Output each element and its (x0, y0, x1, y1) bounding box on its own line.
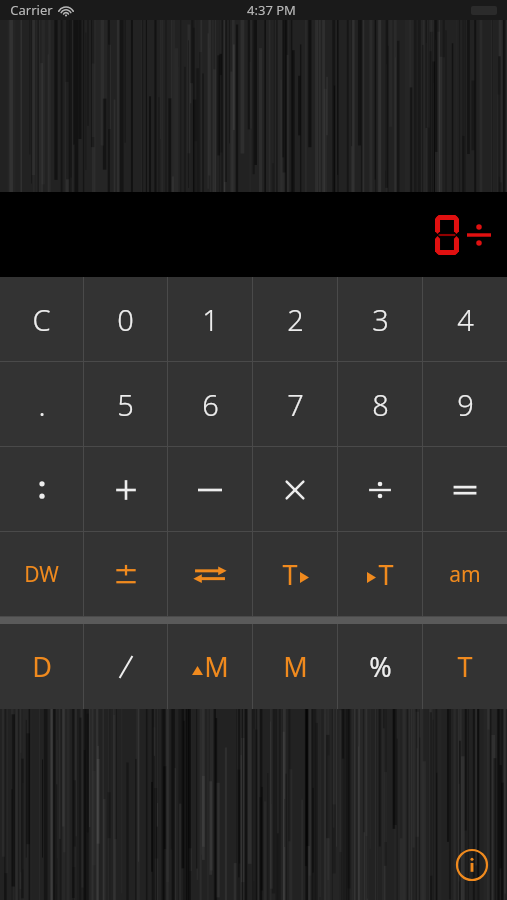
button[interactable]: T (423, 624, 507, 709)
button[interactable]: Time forward (253, 532, 337, 617)
button[interactable]: 0 (84, 277, 167, 362)
button[interactable]: M (253, 624, 337, 709)
other: Multiply (253, 447, 337, 532)
button[interactable]: 9 (423, 362, 507, 447)
button[interactable]: Slash (84, 624, 167, 709)
button[interactable]: 7 (253, 362, 337, 447)
button[interactable]: Info (455, 848, 489, 882)
button[interactable]: Colon (0, 447, 83, 532)
staticText: % (369, 648, 392, 685)
other: Time forward (253, 532, 337, 617)
staticText: D (32, 648, 52, 685)
staticText: 8 (372, 385, 389, 424)
button[interactable]: am (423, 532, 507, 617)
staticText: 7 (287, 385, 304, 424)
staticText: 3 (372, 300, 389, 339)
other: Minus (168, 447, 252, 532)
button[interactable]: . (0, 362, 83, 447)
button[interactable]: 2 (253, 277, 337, 362)
button[interactable]: Memory up (168, 624, 252, 709)
staticText: . (38, 385, 46, 424)
other: Plus (84, 447, 167, 532)
other: Time back (338, 532, 422, 617)
staticText: 4 (457, 300, 474, 339)
button[interactable]: 8 (338, 362, 422, 447)
button[interactable]: Plus or minus (84, 532, 167, 617)
button[interactable]: Equals (423, 447, 507, 532)
staticText: 6 (202, 385, 219, 424)
button[interactable]: Divide (338, 447, 422, 532)
other: Colon (0, 447, 83, 532)
button[interactable]: DW (0, 532, 83, 617)
button[interactable]: Swap (168, 532, 252, 617)
button[interactable]: Minus (168, 447, 252, 532)
other: Memory up (168, 624, 252, 709)
other: Swap (168, 532, 252, 617)
other: Plus or minus (84, 532, 167, 617)
staticText: 5 (117, 385, 134, 424)
button[interactable]: 4 (423, 277, 507, 362)
staticText: 4:37 PM (247, 1, 296, 19)
button[interactable]: Plus (84, 447, 167, 532)
other: Slash (84, 624, 167, 709)
staticText: Carrier (10, 1, 53, 19)
button[interactable]: 3 (338, 277, 422, 362)
staticText: T (457, 648, 473, 685)
staticText: 1 (202, 300, 219, 339)
staticText: M (204, 648, 229, 685)
button[interactable]: 1 (168, 277, 252, 362)
button[interactable]: Time back (338, 532, 422, 617)
staticText: C (32, 300, 51, 339)
button[interactable]: C (0, 277, 83, 362)
button[interactable]: Multiply (253, 447, 337, 532)
staticText: 9 (457, 385, 474, 424)
button[interactable]: D (0, 624, 83, 709)
button[interactable]: % (338, 624, 422, 709)
other: Equals (423, 447, 507, 532)
staticText: T (378, 556, 394, 593)
staticText: 2 (287, 300, 304, 339)
staticText: T (282, 556, 298, 593)
staticText: 0 (117, 300, 134, 339)
staticText: DW (24, 560, 59, 589)
other: Divide (338, 447, 422, 532)
staticText: M (283, 648, 308, 685)
staticText: am (449, 560, 481, 589)
button[interactable]: 6 (168, 362, 252, 447)
button[interactable]: 5 (84, 362, 167, 447)
